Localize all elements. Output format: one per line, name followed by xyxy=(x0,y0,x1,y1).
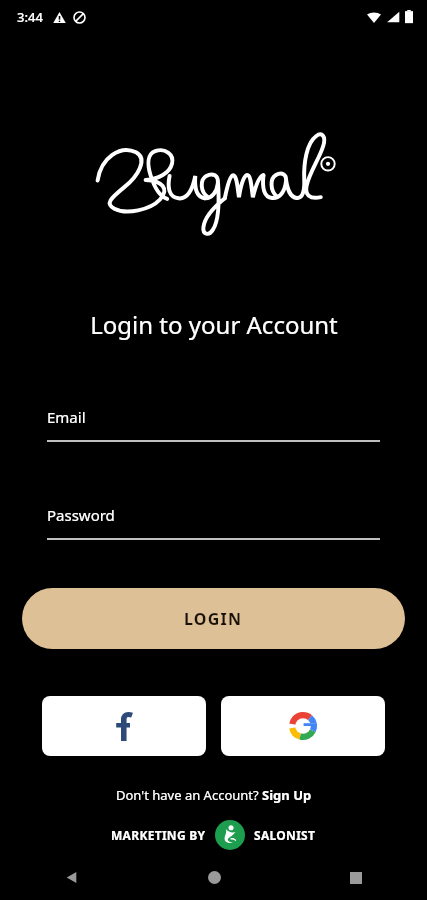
button[interactable]: Back xyxy=(0,855,143,900)
staticText: Login to your Account xyxy=(90,308,338,341)
staticText: 3:44 xyxy=(17,8,43,26)
button[interactable]: Sign in with Google xyxy=(221,696,385,756)
button[interactable]: Email xyxy=(47,407,380,442)
button[interactable]: Password xyxy=(47,505,380,540)
staticText: Email xyxy=(47,407,86,427)
staticText: Don't have an Account? Sign Up xyxy=(116,786,312,804)
staticText: MARKETING BY xyxy=(111,827,206,843)
staticText: LOGIN xyxy=(184,608,243,630)
button[interactable]: Recent apps xyxy=(285,855,427,900)
staticText: SALONIST xyxy=(254,827,316,843)
button[interactable]: Home xyxy=(143,855,285,900)
button[interactable]: Don't have an Account? Sign Up xyxy=(116,786,312,804)
button[interactable]: Sign in with Facebook xyxy=(42,696,206,756)
button[interactable]: LOGIN xyxy=(22,588,405,649)
staticText: Password xyxy=(47,505,115,525)
